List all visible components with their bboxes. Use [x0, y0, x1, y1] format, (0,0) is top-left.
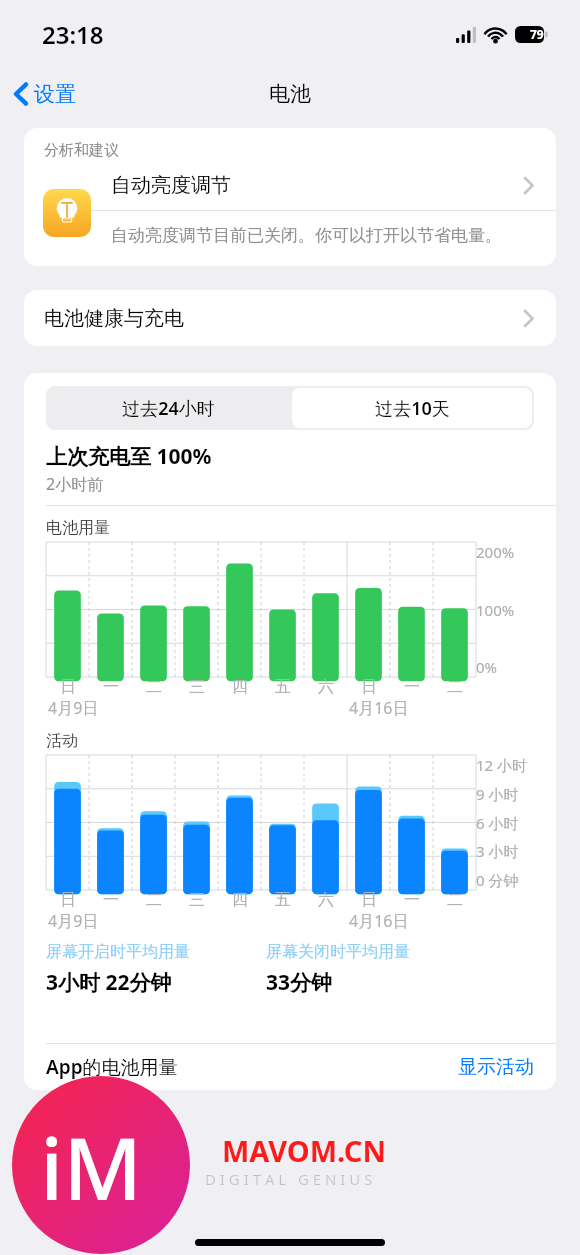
staticText: 一 — [404, 890, 420, 910]
staticText: D I G I T A L G E N I U S — [205, 1169, 373, 1189]
staticText: 屏幕关闭时平均用量 — [266, 942, 410, 962]
staticText: 二 — [146, 677, 162, 697]
staticText: 4月9日 — [48, 697, 99, 719]
staticText: 一 — [404, 677, 420, 697]
staticText: 0 分钟 — [476, 870, 519, 890]
staticText: 23:18 — [42, 18, 104, 51]
staticText: 上次充电至 100% — [46, 442, 212, 471]
staticText: 日 — [60, 677, 76, 697]
staticText: 二 — [447, 677, 463, 697]
staticText: 3 小时 — [476, 841, 519, 861]
button[interactable]: 设置 — [0, 77, 86, 111]
staticText: 6 小时 — [476, 813, 519, 833]
staticText: 自动亮度调节 — [111, 173, 523, 198]
staticText: 二 — [146, 890, 162, 910]
staticText: 六 — [318, 677, 334, 697]
staticText: 4月16日 — [349, 910, 409, 932]
button[interactable]: 电池健康与充电 — [24, 290, 556, 346]
staticText: 日 — [361, 677, 377, 697]
staticText: 100% — [476, 600, 515, 620]
staticText: 设置 — [34, 81, 76, 107]
staticText: 四 — [232, 677, 248, 697]
staticText: MAVOM.CN — [222, 1131, 386, 1170]
staticText: 0% — [476, 657, 498, 677]
staticText: iM — [40, 1108, 143, 1225]
staticText: 过去10天 — [375, 396, 450, 421]
staticText: 四 — [232, 890, 248, 910]
staticText: 三 — [189, 890, 205, 910]
staticText: 活动 — [46, 731, 78, 751]
staticText: 2小时前 — [46, 473, 104, 495]
staticText: 电池 — [269, 81, 311, 107]
staticText: 二 — [447, 890, 463, 910]
staticText: 日 — [361, 890, 377, 910]
staticText: 79 — [530, 26, 544, 42]
staticText: 电池健康与充电 — [44, 306, 523, 331]
staticText: App的电池用量 — [46, 1054, 458, 1080]
staticText: 12 小时 — [476, 755, 528, 775]
staticText: 4月9日 — [48, 910, 99, 932]
staticText: 一 — [103, 677, 119, 697]
button[interactable]: 过去10天 — [292, 388, 532, 428]
staticText: 3小时 22分钟 — [46, 968, 172, 997]
staticText: 五 — [275, 677, 291, 697]
staticText: 电池用量 — [46, 518, 110, 538]
button[interactable]: 自动亮度调节 — [24, 160, 556, 266]
staticText: 33分钟 — [266, 968, 333, 997]
staticText: 4月16日 — [349, 697, 409, 719]
staticText: 过去24小时 — [122, 396, 215, 421]
staticText: 分析和建议 — [44, 141, 119, 160]
staticText: 200% — [476, 542, 515, 562]
staticText: 一 — [103, 890, 119, 910]
staticText: 屏幕开启时平均用量 — [46, 942, 190, 962]
staticText: 自动亮度调节目前已关闭。你可以打开以节省电量。 — [111, 225, 502, 246]
staticText: 三 — [189, 677, 205, 697]
staticText: 五 — [275, 890, 291, 910]
button[interactable]: 过去24小时 — [46, 386, 290, 430]
button[interactable]: 显示活动 — [458, 1055, 556, 1079]
staticText: 六 — [318, 890, 334, 910]
staticText: 日 — [60, 890, 76, 910]
staticText: 显示活动 — [458, 1055, 534, 1079]
staticText: 9 小时 — [476, 784, 519, 804]
